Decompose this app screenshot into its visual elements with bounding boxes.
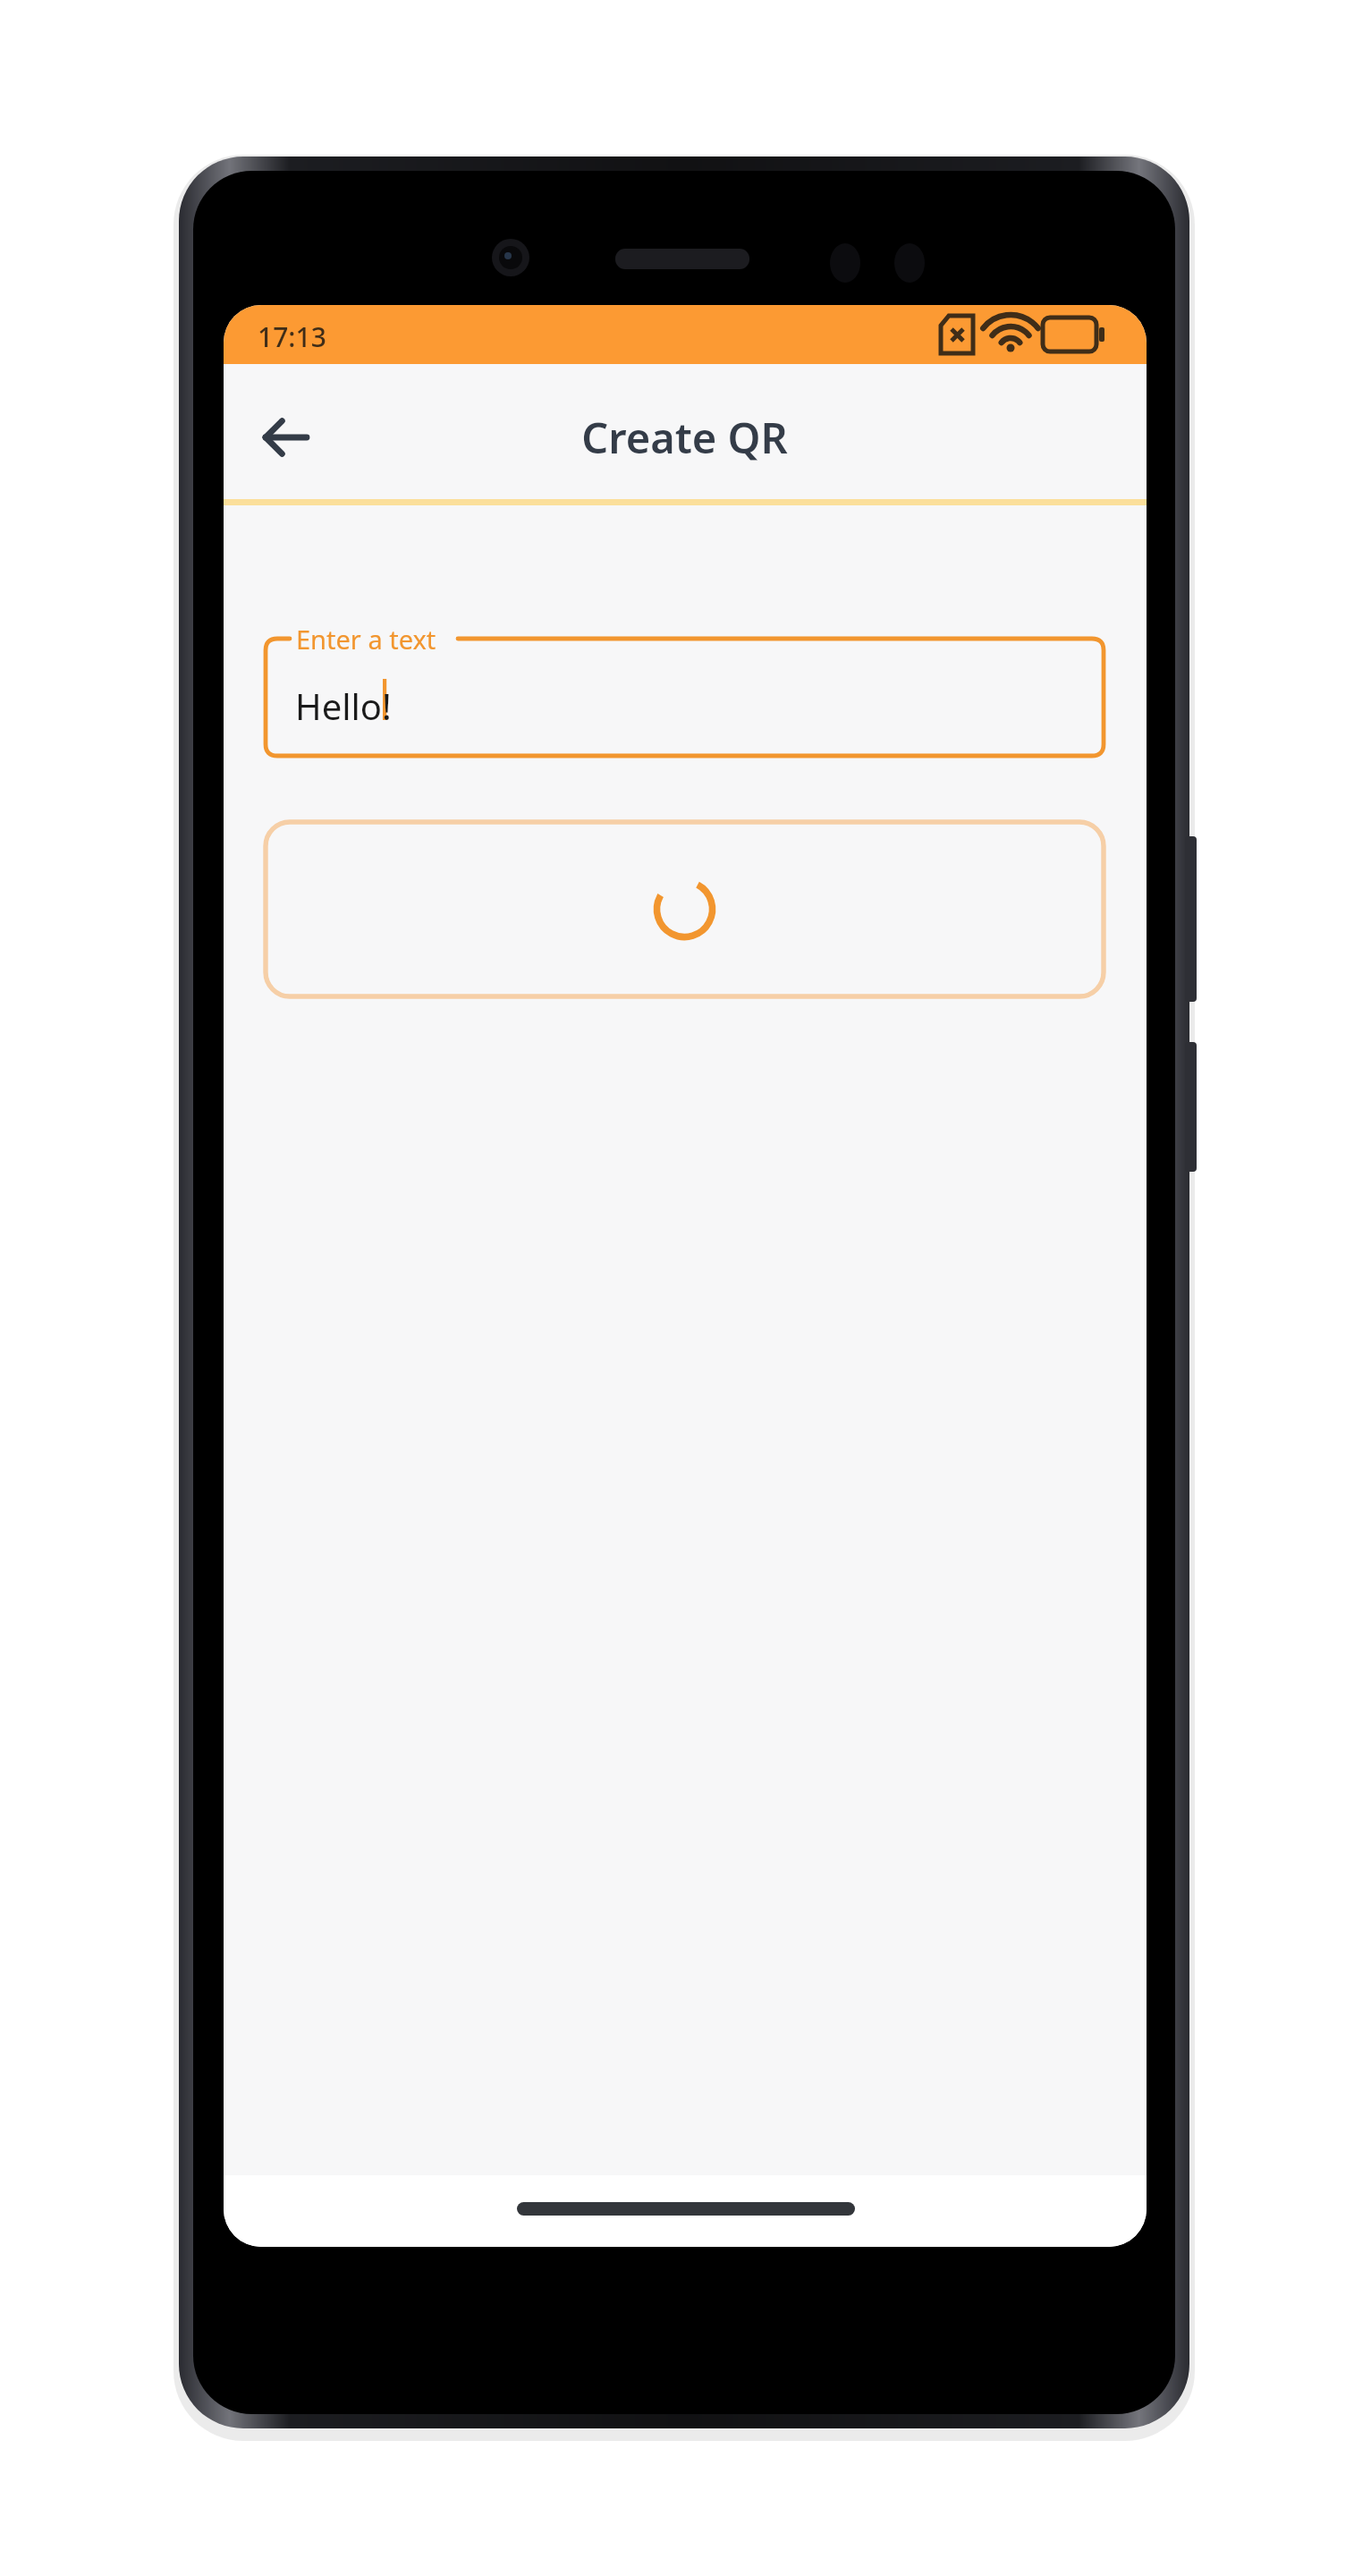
staticText: Hello! bbox=[295, 682, 392, 730]
staticText: Create QR bbox=[581, 409, 788, 466]
button[interactable]: Back bbox=[243, 394, 329, 480]
staticText: Enter a text bbox=[296, 622, 436, 657]
button[interactable]: Hello! bbox=[266, 639, 1104, 756]
button[interactable]: Generating QR code bbox=[266, 822, 1104, 996]
staticText: 17:13 bbox=[258, 318, 326, 354]
